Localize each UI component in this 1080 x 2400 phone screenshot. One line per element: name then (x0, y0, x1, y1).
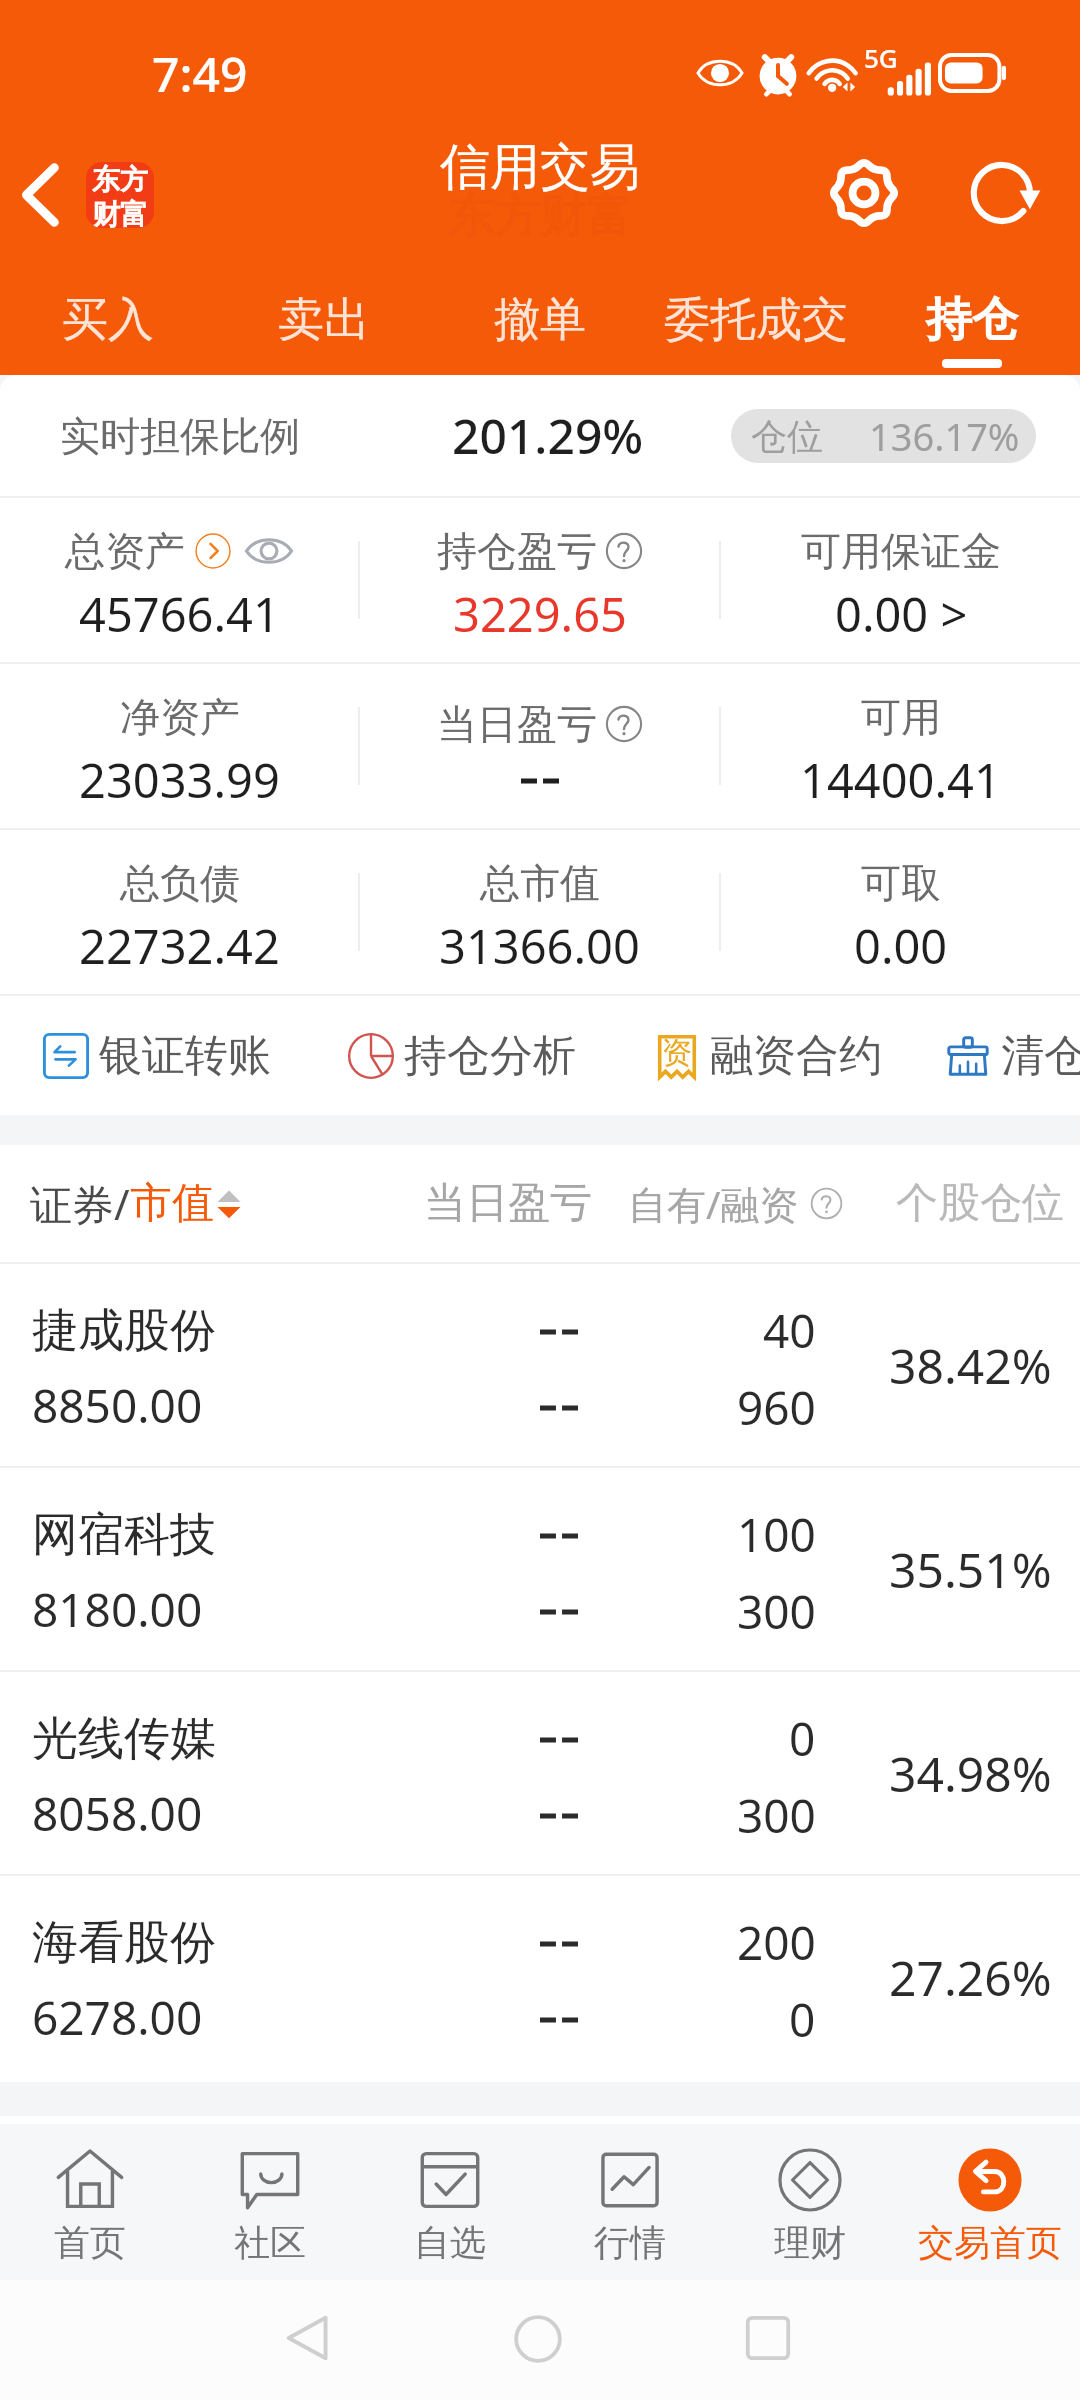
staticText: 35.51% (889, 1537, 1052, 1602)
staticText: 持仓盈亏 (437, 526, 597, 576)
staticText: 融资合约 (710, 1029, 882, 1083)
button[interactable]: 实时担保比例 (60, 411, 300, 461)
button[interactable]: 持仓 (864, 268, 1080, 375)
staticText: 23033.99 (79, 748, 280, 812)
staticText: 200 (737, 1911, 816, 1974)
staticText: 网宿科技 (32, 1506, 216, 1564)
staticText: 资 (662, 1034, 692, 1072)
staticText: 首页 (54, 2220, 126, 2265)
staticText: 6278.00 (32, 1986, 203, 2049)
button[interactable]: 清仓 (944, 1029, 1080, 1083)
staticText: 总资产 (65, 526, 185, 576)
staticText: 光线传媒 (32, 1710, 216, 1768)
button[interactable]: 交易首页 (900, 2124, 1080, 2280)
staticText: 8850.00 (32, 1374, 203, 1437)
button[interactable]: 总负债 (0, 830, 358, 994)
staticText: 14400.41 (800, 748, 1001, 812)
staticText: 可取 (861, 858, 941, 908)
button[interactable]: 委托成交 (648, 268, 864, 375)
button[interactable]: Back (12, 162, 162, 228)
staticText: 自选 (414, 2220, 486, 2265)
staticText: 300 (737, 1580, 816, 1643)
staticText: 27.26% (889, 1945, 1052, 2010)
button[interactable]: 自选 (360, 2124, 540, 2280)
staticText: 委托成交 (664, 291, 848, 349)
staticText: 34.98% (889, 1741, 1052, 1806)
button[interactable]: 仓位 (731, 409, 1036, 463)
staticText: 22732.42 (79, 914, 280, 978)
staticText: 仓位 (751, 414, 823, 459)
staticText: 财富 (92, 197, 148, 228)
button[interactable]: 总市值 (360, 830, 719, 994)
staticText: 当日盈亏 (424, 1177, 592, 1230)
staticText: 8180.00 (32, 1578, 203, 1641)
staticText: 理财 (774, 2220, 846, 2265)
staticText: 0.00 > (835, 582, 968, 646)
staticText: 交易首页 (918, 2220, 1062, 2265)
staticText: 持仓 (926, 291, 1018, 349)
staticText: 捷成股份 (32, 1302, 216, 1360)
staticText: 201.29% (452, 403, 644, 468)
staticText: 可用保证金 (801, 526, 1001, 576)
staticText: 个股仓位 (896, 1177, 1064, 1230)
button[interactable]: Recents (746, 2316, 790, 2360)
button[interactable]: 自有/融资 (628, 1177, 843, 1230)
button[interactable]: 持仓盈亏 (360, 498, 719, 662)
button[interactable]: Settings (818, 147, 910, 239)
button[interactable]: Refresh (958, 147, 1050, 239)
button[interactable]: 证券/ (30, 1175, 241, 1232)
staticText: 40 (763, 1299, 816, 1362)
button[interactable]: 可用 (721, 664, 1080, 828)
button[interactable]: 撤单 (432, 268, 648, 375)
button[interactable]: 买入 (0, 268, 216, 375)
button[interactable]: 可用保证金 (721, 498, 1080, 662)
staticText: 银证转账 (99, 1029, 271, 1083)
button[interactable]: 银证转账 (42, 1029, 271, 1083)
staticText: 当日盈亏 (437, 699, 597, 749)
staticText: 社区 (234, 2220, 306, 2265)
button[interactable]: 社区 (180, 2124, 360, 2280)
staticText: 市值 (130, 1177, 214, 1230)
staticText: 卖出 (278, 291, 370, 349)
staticText: 0 (789, 1707, 816, 1770)
staticText: 撤单 (494, 291, 586, 349)
button[interactable]: 光线传媒 (0, 1672, 1080, 1874)
staticText: 0.00 (854, 914, 948, 978)
button[interactable]: 当日盈亏 (360, 664, 719, 828)
staticText: 7:49 (152, 41, 248, 106)
staticText: 证券/ (30, 1175, 130, 1232)
button[interactable]: 网宿科技 (0, 1468, 1080, 1670)
staticText: 136.17% (869, 410, 1020, 462)
staticText: 行情 (594, 2220, 666, 2265)
button[interactable]: 可取 (721, 830, 1080, 994)
staticText: 海看股份 (32, 1914, 216, 1972)
staticText: 100 (737, 1503, 816, 1566)
staticText: 东方 (92, 162, 148, 197)
staticText: 净资产 (120, 692, 240, 742)
button[interactable]: 卖出 (216, 268, 432, 375)
staticText: 清仓 (1001, 1029, 1080, 1083)
button[interactable]: 总资产 (0, 498, 358, 662)
button[interactable]: 资 (653, 1029, 882, 1083)
button[interactable]: 首页 (0, 2124, 180, 2280)
button[interactable]: 行情 (540, 2124, 720, 2280)
button[interactable]: Home (514, 2315, 562, 2363)
staticText: 自有/融资 (628, 1177, 799, 1230)
staticText: 8058.00 (32, 1782, 203, 1845)
button[interactable]: 净资产 (0, 664, 358, 828)
staticText: 信用交易 (440, 136, 640, 199)
staticText: 31366.00 (439, 914, 640, 978)
staticText: 5G (864, 40, 898, 75)
button[interactable]: 海看股份 (0, 1876, 1080, 2078)
button[interactable]: Back (286, 2315, 332, 2361)
staticText: 45766.41 (79, 582, 280, 646)
button[interactable]: 理财 (720, 2124, 900, 2280)
button[interactable]: 捷成股份 (0, 1264, 1080, 1466)
staticText: 可用 (861, 692, 941, 742)
staticText: 38.42% (889, 1333, 1052, 1398)
staticText: 0 (789, 1988, 816, 2051)
staticText: 3229.65 (453, 582, 627, 646)
staticText: 960 (737, 1376, 816, 1439)
staticText: 总市值 (480, 858, 600, 908)
button[interactable]: 持仓分析 (347, 1029, 576, 1083)
